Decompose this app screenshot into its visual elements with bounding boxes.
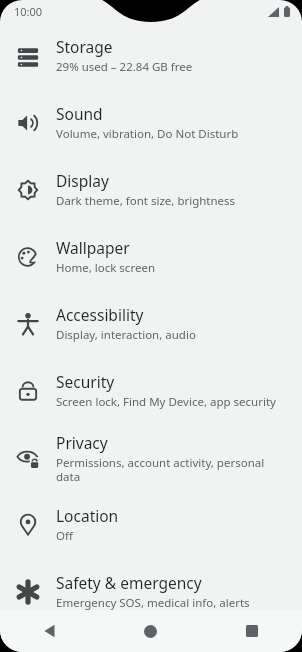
staticText: Storage — [56, 36, 113, 57]
staticText: Safety & emergency — [56, 572, 202, 593]
staticText: Screen lock, Find My Device, app securit… — [56, 394, 276, 410]
button[interactable]: Wallpaper — [0, 223, 302, 290]
button[interactable]: Home — [100, 610, 201, 652]
staticText: 10:00 — [14, 4, 43, 19]
staticText: Privacy — [56, 432, 108, 453]
button[interactable]: Location — [0, 491, 302, 558]
button[interactable]: Privacy — [0, 424, 302, 491]
staticText: Accessibility — [56, 304, 144, 325]
staticText: Display — [56, 170, 109, 191]
button[interactable]: Display — [0, 156, 302, 223]
staticText: Security — [56, 371, 115, 392]
staticText: Home, lock screen — [56, 260, 155, 276]
staticText: Display, interaction, audio — [56, 327, 196, 343]
staticText: Off — [56, 528, 73, 544]
button[interactable]: Recent apps — [201, 610, 302, 652]
staticText: Location — [56, 505, 119, 526]
button[interactable]: Storage — [0, 22, 302, 89]
button[interactable]: Accessibility — [0, 290, 302, 357]
staticText: Sound — [56, 103, 103, 124]
button[interactable]: Security — [0, 357, 302, 424]
staticText: Dark theme, font size, brightness — [56, 193, 236, 209]
button[interactable]: Sound — [0, 89, 302, 156]
staticText: Volume, vibration, Do Not Disturb — [56, 126, 239, 142]
staticText: Emergency SOS, medical info, alerts — [56, 595, 250, 611]
staticText: Permissions, account activity, personal … — [56, 455, 286, 484]
button[interactable]: Safety & emergency — [0, 558, 302, 625]
button[interactable]: Back — [0, 610, 100, 652]
staticText: 29% used – 22.84 GB free — [56, 59, 193, 75]
staticText: Wallpaper — [56, 237, 130, 258]
